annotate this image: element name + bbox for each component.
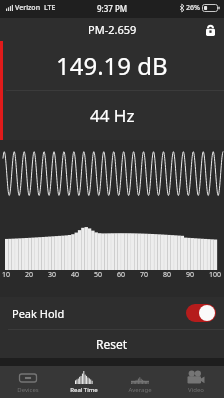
button[interactable]: Real Time bbox=[56, 366, 112, 398]
staticText: 10 bbox=[2, 270, 11, 280]
button[interactable]: Peak Hold bbox=[0, 297, 224, 329]
staticText: Real Time bbox=[70, 386, 98, 394]
staticText: Devices bbox=[17, 386, 39, 394]
staticText: Video bbox=[188, 386, 204, 394]
button[interactable]: Average bbox=[112, 366, 168, 398]
staticText: 9:37 PM bbox=[97, 3, 128, 14]
staticText: 20 bbox=[25, 270, 34, 280]
staticText: PM-2.659 bbox=[88, 22, 137, 37]
staticText: 40 bbox=[71, 270, 80, 280]
staticText: Verizon bbox=[15, 3, 41, 13]
button[interactable]: Devices bbox=[0, 366, 56, 398]
staticText: Average bbox=[128, 386, 152, 394]
staticText: 30 bbox=[48, 270, 57, 280]
staticText: 80 bbox=[163, 270, 172, 280]
staticText: 100 bbox=[209, 270, 222, 280]
staticText: 90 bbox=[186, 270, 195, 280]
button[interactable]: Reset bbox=[0, 330, 224, 358]
staticText: 70 bbox=[140, 270, 149, 280]
staticText: 26% bbox=[186, 3, 200, 13]
button[interactable]: Video bbox=[168, 366, 224, 398]
button[interactable]: Lock bbox=[199, 19, 221, 41]
staticText: 60 bbox=[117, 270, 126, 280]
staticText: LTE bbox=[44, 3, 56, 13]
staticText: Reset bbox=[96, 336, 128, 352]
staticText: 149.19 dB bbox=[56, 49, 168, 82]
staticText: 44 Hz bbox=[90, 104, 135, 127]
staticText: Peak Hold bbox=[12, 306, 65, 321]
staticText: 50 bbox=[94, 270, 103, 280]
